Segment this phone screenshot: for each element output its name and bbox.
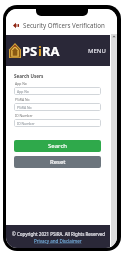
staticText: MENU: [88, 47, 106, 55]
staticText: © Copyright 2021 PSiRA. All Rights Reser…: [12, 231, 105, 237]
staticText: Security Officers Verification: [23, 21, 105, 29]
button[interactable]: MENU: [84, 43, 117, 59]
staticText: PSiRA No: [15, 97, 30, 102]
staticText: App No: [15, 81, 27, 86]
staticText: Privacy and Disclaimer: [34, 238, 82, 244]
button[interactable]: App No: [14, 87, 101, 95]
button[interactable]: Reset: [14, 156, 101, 168]
staticText: Search: [48, 142, 67, 150]
staticText: Reset: [50, 158, 66, 166]
staticText: Search Users: [14, 73, 44, 79]
staticText: i: [38, 42, 42, 60]
staticText: ID Number: [15, 113, 33, 118]
button[interactable]: Scroll: [111, 34, 117, 248]
button[interactable]: Search: [14, 140, 101, 152]
button[interactable]: Privacy and Disclaimer: [34, 238, 82, 244]
staticText: PS: [22, 42, 38, 60]
staticText: App No: [17, 89, 29, 94]
staticText: ID Number: [17, 121, 35, 126]
button[interactable]: Back: [12, 21, 21, 30]
button[interactable]: PSiRA No: [14, 103, 101, 111]
staticText: RA: [42, 42, 60, 60]
staticText: PSiRA No: [17, 105, 32, 110]
button[interactable]: ID Number: [14, 119, 101, 127]
